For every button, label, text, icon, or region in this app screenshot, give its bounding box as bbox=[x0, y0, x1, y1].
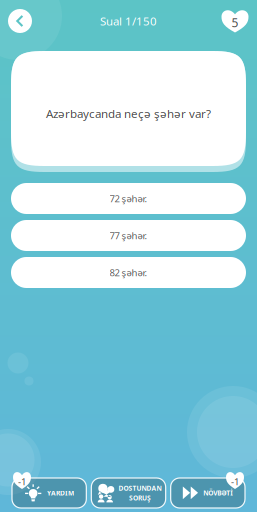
button[interactable]: Back bbox=[4, 5, 36, 37]
button[interactable]: DOSTUNDAN bbox=[91, 478, 166, 508]
staticText: Azərbaycanda neçə şəhər var? bbox=[46, 106, 211, 121]
button[interactable]: NÖVBƏTİ bbox=[171, 478, 245, 508]
staticText: 82 şəhər. bbox=[109, 266, 147, 279]
staticText: YARDIM bbox=[47, 489, 74, 497]
staticText: NÖVBƏTİ bbox=[203, 489, 233, 497]
button[interactable]: 72 şəhər. bbox=[11, 183, 246, 214]
staticText: Sual 1/150 bbox=[100, 13, 157, 29]
staticText: 77 şəhər. bbox=[109, 229, 147, 242]
button[interactable]: 82 şəhər. bbox=[11, 257, 246, 288]
button[interactable]: Lives remaining: 5 bbox=[219, 5, 251, 37]
staticText: DOSTUNDAN bbox=[118, 484, 161, 492]
staticText: -1 bbox=[231, 475, 239, 488]
staticText: 72 şəhər. bbox=[109, 192, 147, 205]
staticText: SORUŞ bbox=[129, 493, 151, 502]
button[interactable]: 77 şəhər. bbox=[11, 220, 246, 251]
button[interactable]: YARDIM bbox=[12, 478, 86, 508]
staticText: 5 bbox=[231, 14, 238, 31]
staticText: -1 bbox=[18, 475, 26, 488]
